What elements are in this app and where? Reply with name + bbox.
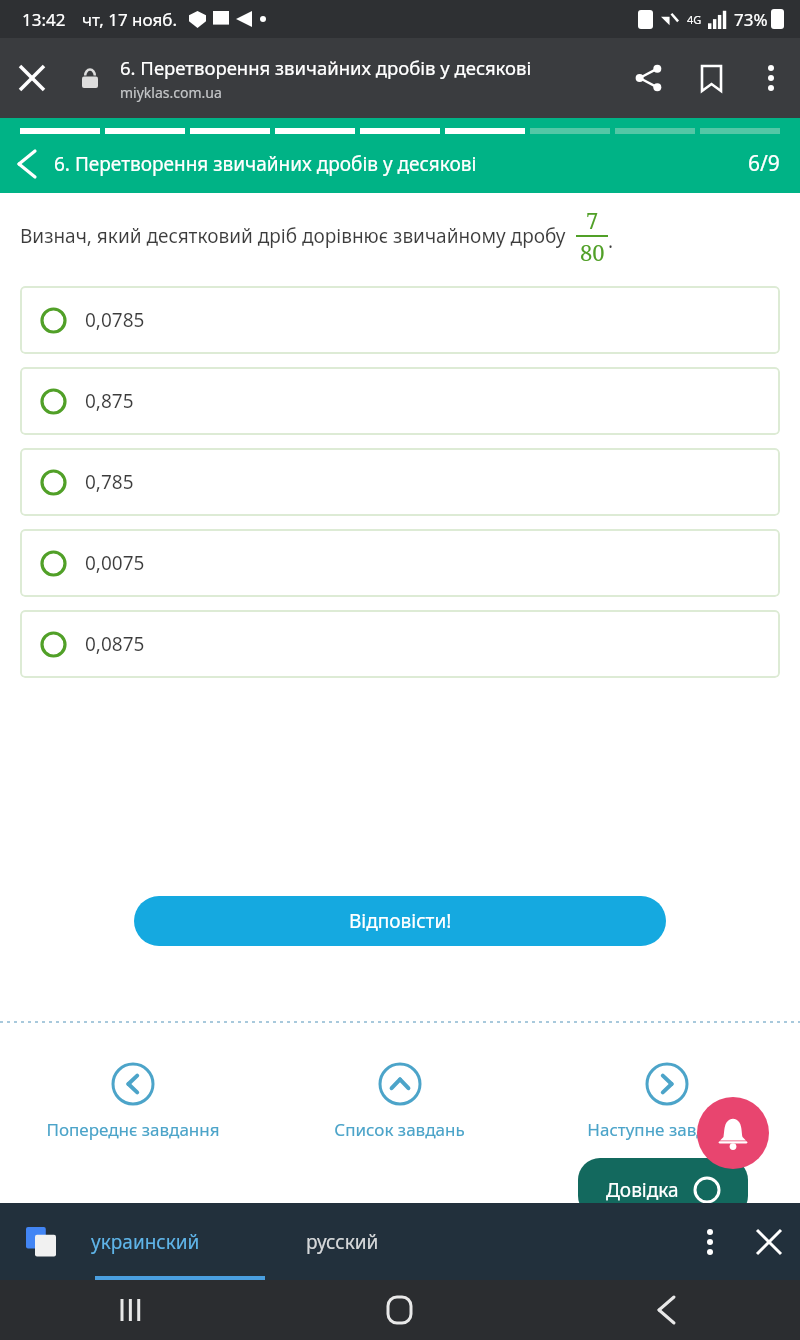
staticText: 80 <box>580 237 605 267</box>
button[interactable]: Попереднє завдання <box>0 1050 266 1141</box>
staticText: 6/9 <box>748 149 780 178</box>
staticText: Попереднє завдання <box>46 1118 220 1141</box>
staticText: 0,0075 <box>85 550 145 576</box>
button[interactable]: Notifications <box>697 1097 769 1169</box>
staticText: 7 <box>586 205 599 235</box>
button[interactable]: 0,875 <box>20 367 780 435</box>
button[interactable]: 0,0785 <box>20 286 780 354</box>
button[interactable]: русский <box>234 1203 450 1280</box>
staticText: 0,0785 <box>85 307 145 333</box>
staticText: 0,785 <box>85 469 134 495</box>
button[interactable]: Довідка <box>578 1158 748 1218</box>
button[interactable]: украинский <box>56 1203 234 1280</box>
button[interactable]: Back <box>0 137 54 191</box>
staticText: Визнач, який десятковий дріб дорівнює зв… <box>20 223 566 249</box>
button[interactable]: More options <box>682 1214 738 1270</box>
staticText: 73% <box>734 8 768 31</box>
button[interactable]: Home <box>266 1280 533 1340</box>
button[interactable]: Список завдань <box>266 1050 533 1141</box>
button[interactable]: 0,0075 <box>20 529 780 597</box>
staticText: 4G <box>687 12 702 27</box>
button[interactable]: 0,785 <box>20 448 780 516</box>
button[interactable]: More options <box>742 49 800 107</box>
staticText: украинский <box>91 1229 200 1255</box>
other: Google Translate <box>26 1227 56 1257</box>
staticText: 13:42 <box>22 8 66 31</box>
staticText: 6. Перетворення звичайних дробів у десяк… <box>120 55 532 80</box>
button[interactable]: Recents <box>0 1280 266 1340</box>
staticText: miyklas.com.ua <box>120 83 222 102</box>
button[interactable]: Наступне завдання <box>533 1050 800 1141</box>
button[interactable]: Bookmark <box>680 47 742 109</box>
button[interactable]: Close <box>0 46 64 110</box>
button[interactable]: Share <box>618 47 680 109</box>
staticText: Список завдань <box>334 1118 465 1141</box>
staticText: Відповісти! <box>349 908 452 934</box>
staticText: Наступне завдання <box>587 1118 747 1141</box>
button[interactable]: Close <box>738 1211 800 1273</box>
staticText: . <box>608 228 614 254</box>
button[interactable]: 0,0875 <box>20 610 780 678</box>
button[interactable]: Відповісти! <box>134 896 666 946</box>
staticText: 0,0875 <box>85 631 145 657</box>
button[interactable]: Back <box>533 1280 800 1340</box>
staticText: 0,875 <box>85 388 134 414</box>
staticText: 6. Перетворення звичайних дробів у десяк… <box>54 151 748 177</box>
staticText: чт, 17 нояб. <box>82 8 177 31</box>
staticText: русский <box>306 1229 379 1255</box>
staticText: Довідка <box>606 1177 679 1203</box>
other: Secure <box>64 52 116 104</box>
